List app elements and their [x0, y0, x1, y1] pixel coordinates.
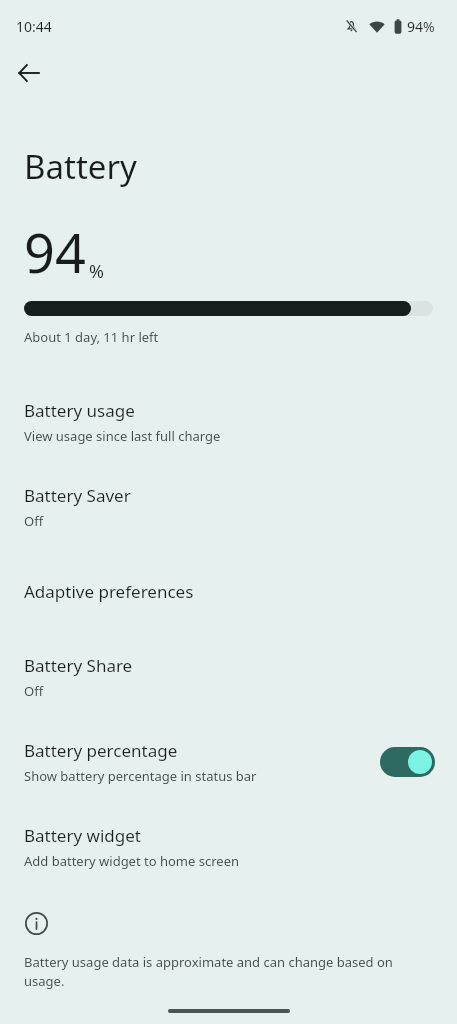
staticText: Battery Saver — [24, 484, 131, 507]
button[interactable]: Battery Saver — [0, 464, 457, 549]
staticText: 94% — [407, 17, 435, 36]
staticText: Adaptive preferences — [24, 580, 194, 603]
staticText: Battery usage data is approximate and ca… — [24, 953, 435, 990]
button[interactable]: Information — [24, 911, 48, 935]
staticText: Off — [24, 512, 44, 530]
staticText: Battery widget — [24, 824, 141, 847]
button[interactable]: Adaptive preferences — [0, 549, 457, 634]
staticText: Battery Share — [24, 654, 133, 677]
staticText: Battery usage — [24, 399, 135, 422]
staticText: Battery — [24, 144, 137, 189]
staticText: Add battery widget to home screen — [24, 852, 240, 870]
button[interactable]: Battery percentage — [0, 719, 457, 804]
staticText: 94 — [24, 215, 86, 289]
button[interactable]: Back — [8, 52, 50, 94]
staticText: 10:44 — [16, 17, 52, 36]
staticText: View usage since last full charge — [24, 427, 221, 445]
button[interactable]: Battery Share — [0, 634, 457, 719]
staticText: About 1 day, 11 hr left — [24, 328, 159, 346]
staticText: Off — [24, 682, 44, 700]
staticText: Show battery percentage in status bar — [24, 767, 257, 785]
staticText: % — [89, 259, 104, 284]
button[interactable]: Battery usage — [0, 379, 457, 464]
staticText: Battery percentage — [24, 739, 178, 762]
button[interactable]: Battery widget — [0, 804, 457, 889]
